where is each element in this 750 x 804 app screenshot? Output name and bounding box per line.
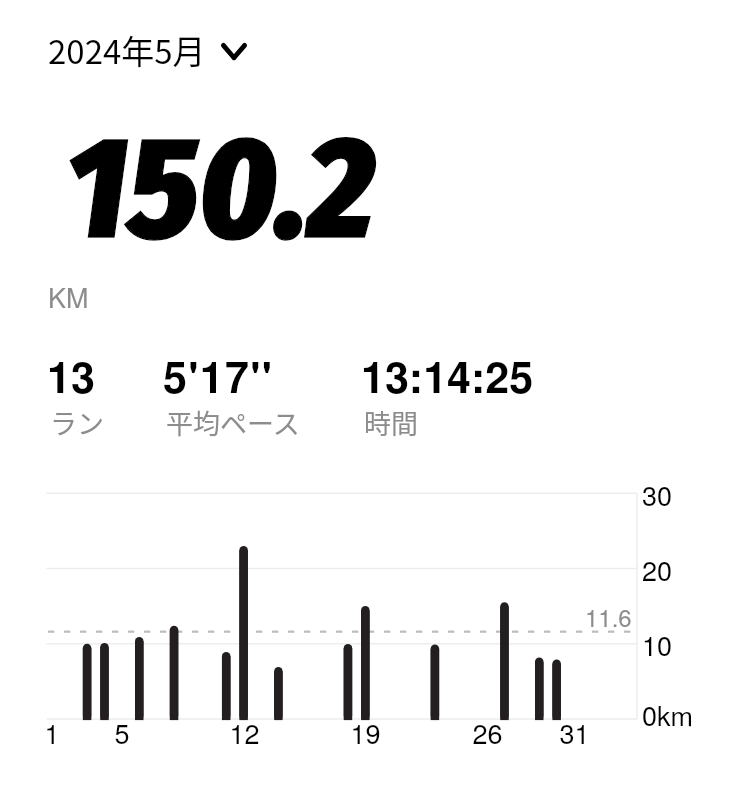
staticText: ラン (50, 403, 104, 442)
staticText: 30 (642, 475, 673, 514)
staticText: 0km (642, 695, 694, 734)
staticText: KM (48, 277, 89, 316)
staticText: 10 (642, 625, 673, 664)
button[interactable]: 13:14:25 (351, 345, 544, 411)
staticText: 20 (642, 550, 673, 589)
button[interactable]: Daily distance chart for 2024年5月 (40, 478, 640, 728)
staticText: 1 (44, 713, 60, 752)
staticText: 13 (47, 345, 95, 407)
button[interactable]: 5'17'' (153, 345, 284, 411)
staticText: 2024年5月 (48, 26, 206, 74)
staticText: 時間 (364, 403, 418, 442)
staticText: 11.6 (585, 599, 632, 633)
staticText: 19 (350, 713, 381, 752)
staticText: 平均ペース (166, 403, 300, 442)
staticText: 5 (114, 713, 130, 752)
staticText: 150.2 (66, 104, 375, 274)
button[interactable]: 13 (37, 345, 105, 411)
staticText: 150.2 (66, 104, 375, 274)
staticText: 31 (559, 713, 590, 752)
button[interactable]: Open month picker (205, 27, 263, 77)
staticText: 5'17'' (163, 345, 274, 407)
staticText: 13:14:25 (361, 345, 534, 407)
button[interactable]: 2024年5月 — change month (34, 14, 220, 86)
staticText: 12 (229, 713, 260, 752)
staticText: 26 (472, 713, 503, 752)
